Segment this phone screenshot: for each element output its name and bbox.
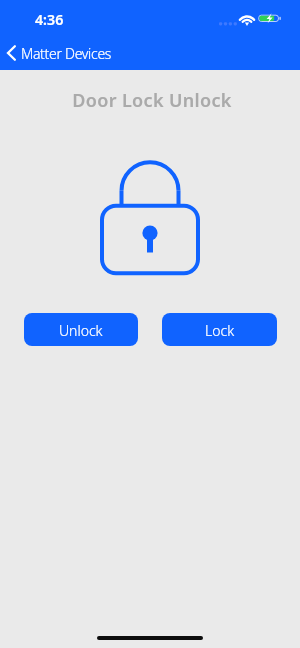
staticText: Matter Devices [21,44,112,63]
button[interactable]: Back [5,43,112,63]
button[interactable]: Unlock [24,313,138,346]
staticText: Door Lock Unlock [2,88,300,113]
staticText: Lock [205,321,235,340]
other: Back [5,43,18,63]
staticText: 4:36 [35,10,64,29]
staticText: Unlock [59,321,103,340]
button[interactable]: Lock [162,313,277,346]
